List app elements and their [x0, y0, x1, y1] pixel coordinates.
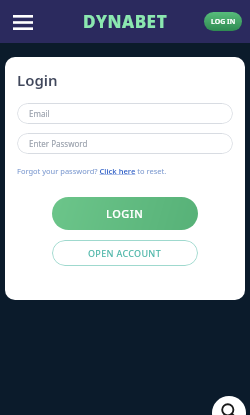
staticText: Email [29, 108, 50, 119]
staticText: Forgot your password? Click here to rese… [17, 166, 167, 176]
staticText: LOG IN [211, 17, 236, 27]
button[interactable]: Forgot your password? Click here to rese… [17, 166, 167, 176]
button[interactable]: Search [212, 396, 246, 415]
staticText: Login [17, 70, 58, 90]
button[interactable]: Open menu [10, 9, 36, 35]
button[interactable]: LOG IN [204, 12, 242, 31]
button[interactable]: OPEN ACCOUNT [52, 240, 198, 266]
staticText: DYNABET [83, 10, 168, 33]
button[interactable]: Enter Password [17, 133, 233, 154]
button[interactable]: LOGIN [52, 197, 198, 230]
staticText: Enter Password [29, 138, 88, 149]
button[interactable]: Email [17, 103, 233, 124]
staticText: LOGIN [106, 206, 144, 221]
staticText: OPEN ACCOUNT [88, 247, 162, 259]
